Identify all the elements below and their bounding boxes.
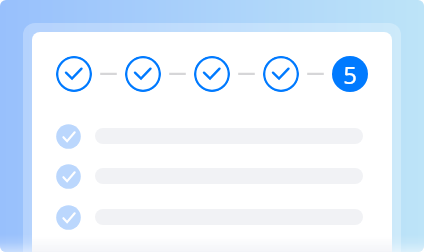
button[interactable]: List item 2 — [56, 163, 363, 189]
button[interactable]: Step 3 completed — [194, 56, 230, 92]
button[interactable]: List item 1 — [56, 123, 363, 149]
button[interactable]: List item 3 — [56, 204, 363, 230]
button[interactable]: Step 4 completed — [263, 56, 299, 92]
button[interactable]: Step 2 completed — [125, 56, 161, 92]
button[interactable]: Step 5, current — [332, 56, 368, 92]
button[interactable]: Step 1 completed — [56, 56, 92, 92]
staticText: 5 — [343, 58, 357, 91]
